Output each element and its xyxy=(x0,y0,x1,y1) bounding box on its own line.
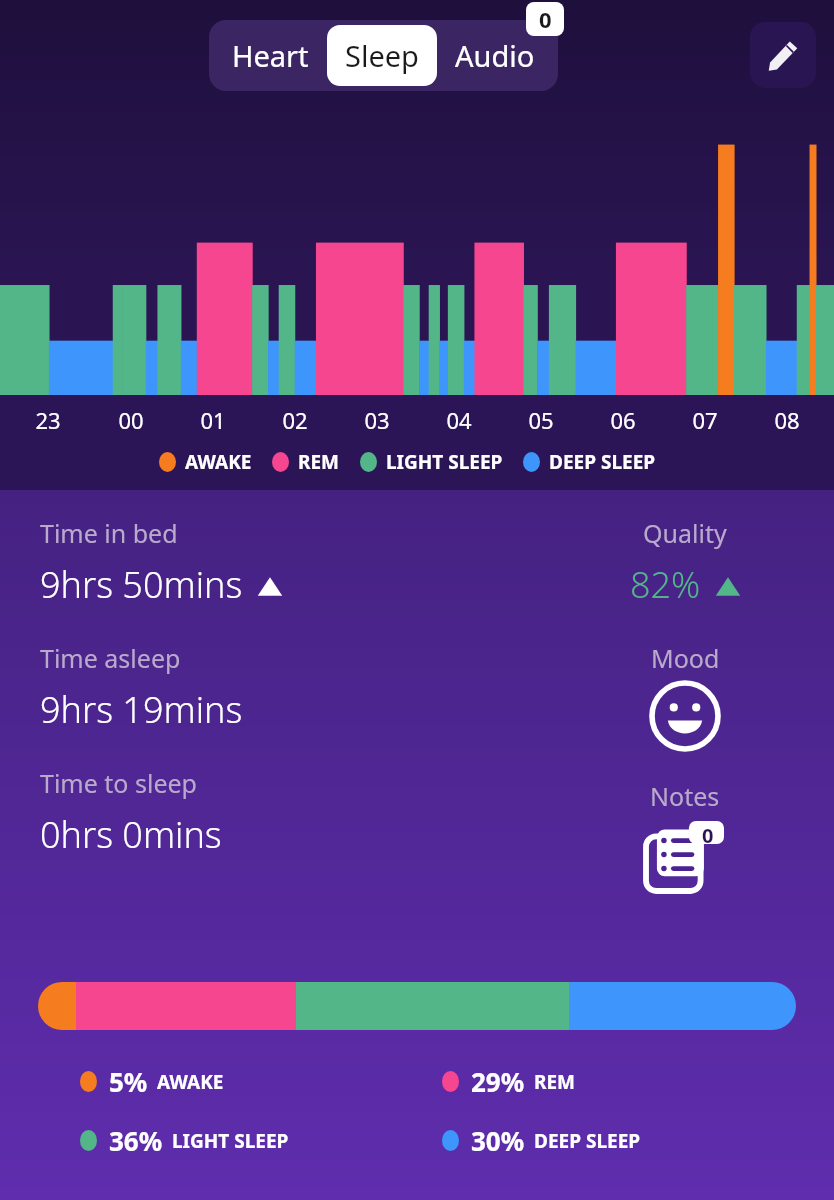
staticText: 08 xyxy=(774,405,800,435)
staticText: Notes xyxy=(650,779,720,813)
button[interactable]: Heart xyxy=(214,25,327,86)
staticText: 0 xyxy=(702,822,714,845)
button[interactable]: Audio xyxy=(437,25,553,86)
staticText: 04 xyxy=(446,405,472,435)
staticText: 23 xyxy=(35,405,61,435)
staticText: 06 xyxy=(610,405,636,435)
staticText: 05 xyxy=(528,405,554,435)
button[interactable]: Sleep xyxy=(327,25,437,86)
staticText: REM xyxy=(534,1069,576,1095)
staticText: 0 xyxy=(539,4,552,34)
staticText: 9hrs 50mins xyxy=(40,560,243,609)
staticText: Heart xyxy=(232,36,309,75)
staticText: 9hrs 19mins xyxy=(40,685,243,734)
staticText: Time in bed xyxy=(40,516,178,550)
staticText: AWAKE xyxy=(157,1069,224,1095)
staticText: AWAKE xyxy=(185,449,252,475)
staticText: Mood xyxy=(651,641,720,675)
button[interactable]: Mood xyxy=(652,683,718,749)
staticText: 01 xyxy=(200,405,226,435)
staticText: DEEP SLEEP xyxy=(534,1128,641,1154)
staticText: 03 xyxy=(364,405,390,435)
staticText: LIGHT SLEEP xyxy=(172,1128,289,1154)
staticText: 00 xyxy=(118,405,144,435)
staticText: 0hrs 0mins xyxy=(40,810,222,859)
staticText: DEEP SLEEP xyxy=(549,449,656,475)
button[interactable]: Edit xyxy=(750,22,816,88)
staticText: Time to sleep xyxy=(40,766,197,800)
staticText: Time asleep xyxy=(40,641,181,675)
staticText: REM xyxy=(298,449,340,475)
staticText: 29% xyxy=(471,1064,525,1099)
staticText: 07 xyxy=(692,405,718,435)
staticText: Audio xyxy=(455,36,535,75)
staticText: 36% xyxy=(109,1123,163,1158)
staticText: 82% xyxy=(630,560,701,609)
staticText: Sleep xyxy=(345,36,419,75)
staticText: 02 xyxy=(282,405,308,435)
staticText: 5% xyxy=(109,1064,148,1099)
staticText: LIGHT SLEEP xyxy=(386,449,503,475)
staticText: 30% xyxy=(471,1123,525,1158)
button[interactable]: Notes xyxy=(646,821,724,891)
staticText: Quality xyxy=(643,516,727,550)
